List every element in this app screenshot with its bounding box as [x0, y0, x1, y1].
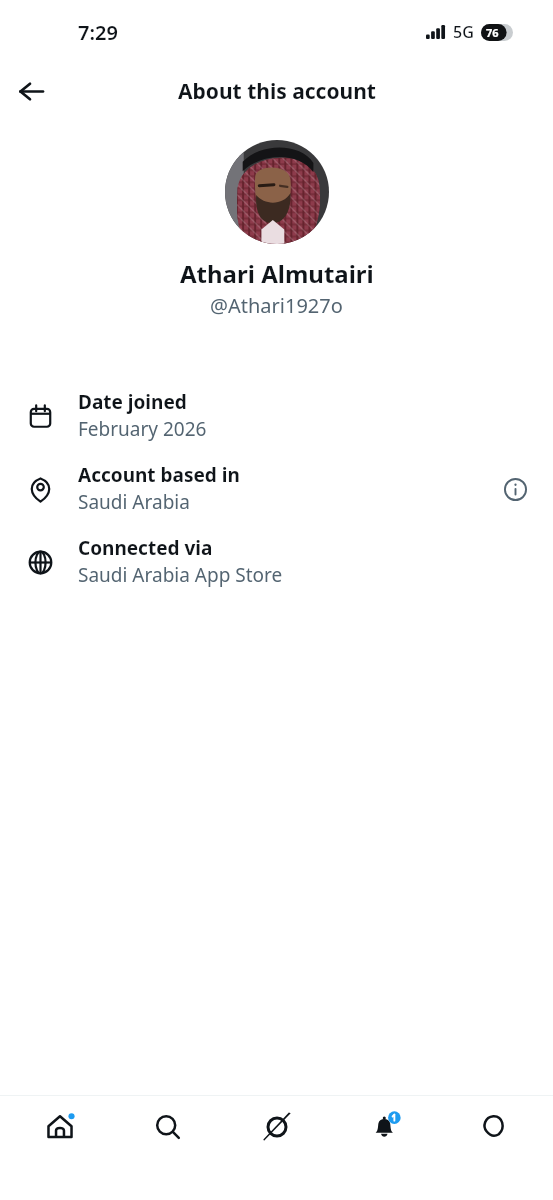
- button[interactable]: Search: [120, 1096, 216, 1200]
- button[interactable]: Connected via: [0, 525, 553, 598]
- button[interactable]: Account based in: [0, 452, 553, 525]
- button[interactable]: Grok: [229, 1096, 325, 1200]
- button[interactable]: Messages: [445, 1096, 541, 1200]
- staticText: Saudi Arabia: [78, 489, 190, 515]
- staticText: 5G: [453, 21, 474, 43]
- staticText: Connected via: [78, 535, 213, 561]
- staticText: 76: [486, 25, 499, 40]
- button[interactable]: Notifications: [337, 1096, 433, 1200]
- button[interactable]: Date joined: [0, 379, 553, 452]
- button[interactable]: Profile photo: [225, 140, 329, 244]
- button[interactable]: Back: [8, 68, 54, 114]
- staticText: 7:29: [78, 19, 118, 46]
- staticText: Saudi Arabia App Store: [78, 562, 283, 588]
- staticText: Date joined: [78, 389, 187, 415]
- button[interactable]: Home: [12, 1096, 108, 1200]
- button[interactable]: More information: [497, 471, 533, 507]
- staticText: @Athari1927o: [210, 292, 343, 319]
- staticText: Account based in: [78, 462, 240, 488]
- staticText: February 2026: [78, 416, 207, 442]
- staticText: Athari Almutairi: [180, 257, 374, 290]
- staticText: About this account: [178, 77, 376, 106]
